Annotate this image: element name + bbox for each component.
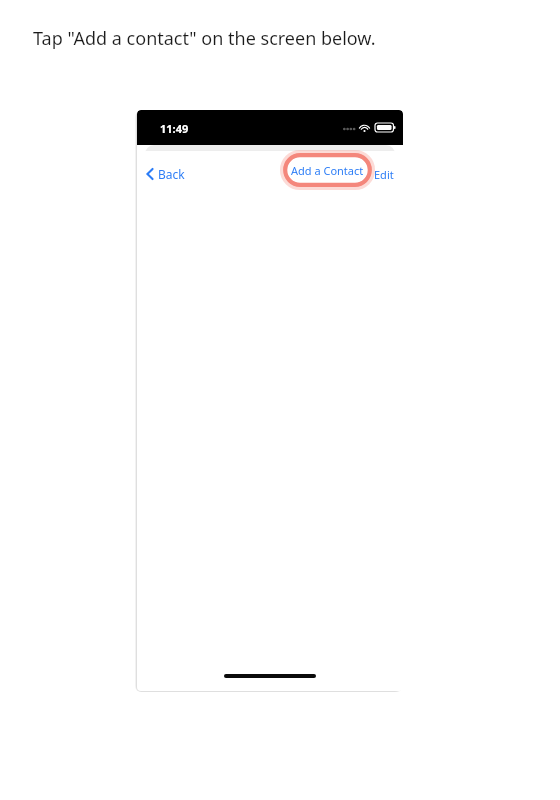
staticText: Back	[158, 166, 185, 182]
button[interactable]: Edit	[372, 163, 396, 186]
staticText: Tap "Add a contact" on the screen below.	[33, 26, 376, 51]
staticText: Edit	[374, 167, 394, 182]
staticText: Add a Contact	[291, 163, 364, 178]
button[interactable]: Add a Contact	[283, 153, 372, 187]
button[interactable]: Back	[143, 162, 188, 186]
staticText: 11:49	[160, 121, 189, 136]
